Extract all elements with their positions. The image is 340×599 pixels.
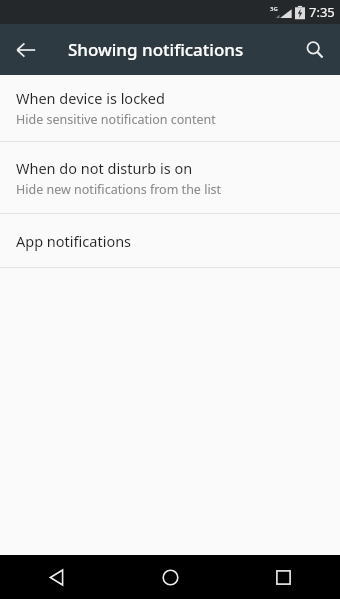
button[interactable]: When device is locked	[0, 75, 340, 141]
button[interactable]: App notifications	[0, 214, 340, 267]
staticText: When do not disturb is on	[16, 158, 193, 178]
staticText: When device is locked	[16, 88, 165, 108]
staticText: Hide new notifications from the list	[16, 181, 222, 198]
button[interactable]: Back	[0, 24, 51, 75]
staticText: 7:35	[309, 3, 335, 21]
button[interactable]: Recent apps	[227, 555, 340, 599]
button[interactable]: Home	[114, 555, 227, 599]
button[interactable]: When do not disturb is on	[0, 142, 340, 213]
button[interactable]: Search	[289, 24, 340, 75]
button[interactable]: Back	[0, 555, 114, 599]
staticText: App notifications	[16, 231, 132, 251]
staticText: Hide sensitive notification content	[16, 111, 216, 128]
staticText: 3G	[270, 5, 278, 13]
staticText: Showing notifications	[68, 38, 244, 61]
